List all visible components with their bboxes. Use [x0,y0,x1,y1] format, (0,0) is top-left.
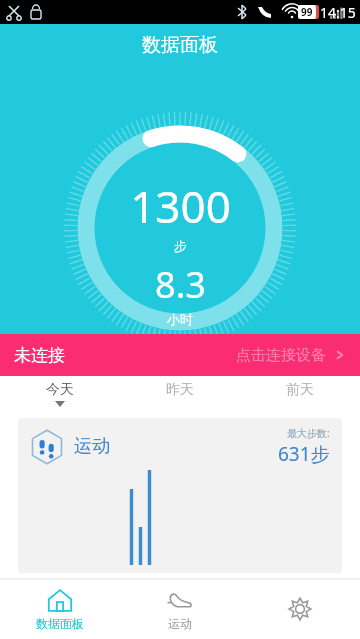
staticText: 99 [301,5,313,19]
staticText: 数据面板 [142,33,218,57]
button[interactable]: 昨天 [120,376,240,399]
staticText: 14:15 [320,3,356,22]
staticText: 运动 [74,435,110,458]
staticText: 1300 [130,176,231,236]
button[interactable]: 今天 [0,376,120,407]
button[interactable]: 运动 [18,418,342,573]
button[interactable]: Settings [240,590,360,628]
staticText: 点击连接设备 [236,346,326,365]
staticText: 步 [174,238,187,254]
button[interactable]: 前天 [240,376,360,399]
staticText: 631步 [278,441,330,467]
staticText: 最大步数: [287,426,330,440]
staticText: 今天 [46,381,74,399]
staticText: 小时 [167,311,193,327]
staticText: 昨天 [166,381,194,399]
button[interactable]: 数据面板 [0,581,120,637]
staticText: 前天 [286,381,314,399]
button[interactable]: 未连接 [0,334,360,376]
staticText: 8.3 [155,260,206,309]
button[interactable]: 运动 [120,581,240,637]
staticText: 运动 [168,616,192,631]
staticText: 数据面板 [36,616,84,631]
staticText: 未连接 [14,345,65,366]
